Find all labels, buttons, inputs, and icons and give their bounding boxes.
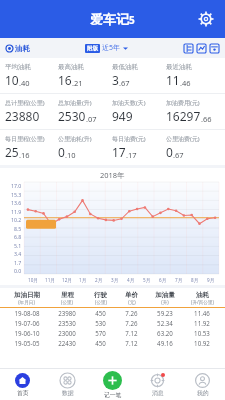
staticText: 9月 xyxy=(207,277,215,283)
staticText: 19-05-05 xyxy=(14,339,40,347)
button[interactable]: 油耗 xyxy=(6,44,30,53)
staticText: 6月 xyxy=(159,277,167,283)
staticText: 5 xyxy=(129,13,135,27)
staticText: 加油天数(天) xyxy=(112,99,146,107)
staticText: 我的 xyxy=(197,389,209,396)
button[interactable]: 加油天数(天) xyxy=(112,99,166,124)
staticText: 平均油耗 xyxy=(5,63,31,71)
button[interactable]: 19-06-10 xyxy=(4,328,221,338)
staticText: 25 xyxy=(5,144,19,160)
button[interactable]: 每日油费(元) xyxy=(112,135,166,160)
staticText: 570 xyxy=(95,329,106,337)
button[interactable]: 每日里程(公里) xyxy=(5,135,58,160)
button[interactable]: 最低油耗 xyxy=(112,63,166,88)
button[interactable]: 19-07-06 xyxy=(4,318,221,328)
staticText: 记一笔 xyxy=(104,391,122,398)
button[interactable]: 总加油量(升) xyxy=(58,99,112,124)
button[interactable]: 19-05-05 xyxy=(4,338,221,348)
staticText: 加油日期 xyxy=(14,291,40,299)
staticText: 最高油耗 xyxy=(58,63,84,71)
staticText: 7月 xyxy=(175,277,183,283)
staticText: 59.23 xyxy=(157,309,173,317)
staticText: .40 xyxy=(19,78,30,88)
staticText: 19-06-10 xyxy=(14,329,40,337)
button[interactable]: 首页 xyxy=(0,368,45,400)
staticText: 0 xyxy=(58,144,65,160)
staticText: 2530 xyxy=(58,108,86,124)
staticText: 23000 xyxy=(58,329,76,337)
button[interactable]: 附版 xyxy=(85,43,128,53)
staticText: 10.53 xyxy=(194,329,210,337)
button[interactable]: 日历 xyxy=(209,43,219,53)
staticText: .67 xyxy=(173,150,184,160)
staticText: 450 xyxy=(95,309,106,317)
staticText: 52.34 xyxy=(157,319,173,327)
staticText: 11 xyxy=(166,72,180,88)
staticText: 1.7 xyxy=(14,259,22,266)
staticText: .07 xyxy=(86,114,97,124)
staticText: .21 xyxy=(72,78,83,88)
staticText: 每日里程(公里) xyxy=(5,135,45,143)
button[interactable]: 公里油费(元) xyxy=(166,135,220,160)
button[interactable]: 最近油耗 xyxy=(166,63,220,88)
staticText: 消息 xyxy=(152,389,164,396)
staticText: 10 xyxy=(5,72,19,88)
staticText: 12月 xyxy=(62,277,72,283)
staticText: 附版 xyxy=(87,45,98,52)
staticText: 17.0 xyxy=(11,182,22,189)
staticText: 最低油耗 xyxy=(112,63,138,71)
button[interactable]: 记一笔 xyxy=(90,368,135,400)
staticText: .67 xyxy=(119,78,130,88)
staticText: 63.20 xyxy=(157,329,173,337)
button[interactable]: 列表 xyxy=(183,43,193,53)
staticText: 8月 xyxy=(191,277,199,283)
staticText: 总计里程(公里) xyxy=(5,99,45,107)
staticText: 10.92 xyxy=(194,339,210,347)
staticText: .66 xyxy=(201,114,212,124)
staticText: 3月 xyxy=(111,277,119,283)
staticText: .46 xyxy=(180,78,191,88)
staticText: 单价 xyxy=(125,291,138,299)
staticText: 16297 xyxy=(166,108,201,124)
button[interactable]: 最高油耗 xyxy=(58,63,112,88)
button[interactable]: 图表 xyxy=(196,43,206,53)
staticText: 0 xyxy=(166,144,173,160)
button[interactable]: 设置 xyxy=(195,8,217,30)
button[interactable]: 数据 xyxy=(45,368,90,400)
staticText: 公里油耗(升) xyxy=(58,135,92,143)
staticText: 11.46 xyxy=(194,309,210,317)
staticText: (升) xyxy=(161,299,169,305)
staticText: 数据 xyxy=(62,389,74,396)
staticText: 450 xyxy=(95,339,106,347)
button[interactable]: 总计里程(公里) xyxy=(5,99,58,124)
staticText: 3 xyxy=(112,72,119,88)
staticText: 2018年 xyxy=(100,170,125,180)
staticText: 17 xyxy=(112,144,126,160)
staticText: 49.16 xyxy=(157,339,173,347)
staticText: 10月 xyxy=(28,277,38,283)
staticText: 6.8 xyxy=(14,233,22,240)
staticText: 23980 xyxy=(58,309,76,317)
button[interactable]: 我的 xyxy=(180,368,225,400)
button[interactable]: 19-08-08 xyxy=(4,308,221,318)
staticText: 每日油费(元) xyxy=(112,135,146,143)
staticText: 11.9 xyxy=(11,208,22,215)
staticText: 总加油量(升) xyxy=(58,99,92,107)
staticText: 加油费用(元) xyxy=(166,99,200,107)
staticText: 7.26 xyxy=(125,319,138,327)
staticText: (元) xyxy=(128,299,136,305)
staticText: 19-08-08 xyxy=(14,309,40,317)
staticText: 7.12 xyxy=(125,329,138,337)
button[interactable]: 消息 xyxy=(135,368,180,400)
button[interactable]: 公里油耗(升) xyxy=(58,135,112,160)
button[interactable]: 平均油耗 xyxy=(5,63,58,88)
staticText: 里程 xyxy=(61,291,74,299)
staticText: 22430 xyxy=(58,339,76,347)
staticText: .17 xyxy=(126,150,137,160)
button[interactable]: 加油费用(元) xyxy=(166,99,220,124)
staticText: 11.92 xyxy=(194,319,210,327)
staticText: 4月 xyxy=(127,277,135,283)
staticText: 0.0 xyxy=(14,267,22,274)
staticText: 5.1 xyxy=(14,242,22,249)
staticText: 530 xyxy=(95,319,106,327)
